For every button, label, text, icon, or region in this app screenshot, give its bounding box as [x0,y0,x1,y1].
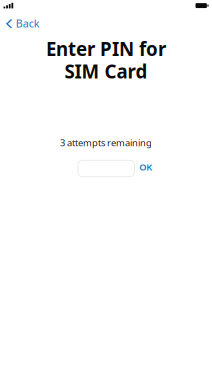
button[interactable]: PIN [78,160,134,177]
staticText: 3 attempts remaining [60,136,152,149]
staticText: SIM Card [64,59,147,84]
staticText: Back [16,16,40,30]
button[interactable]: OK [135,156,156,178]
button[interactable]: Back [0,13,46,33]
staticText: OK [139,161,152,173]
staticText: Enter PIN for [46,36,166,61]
